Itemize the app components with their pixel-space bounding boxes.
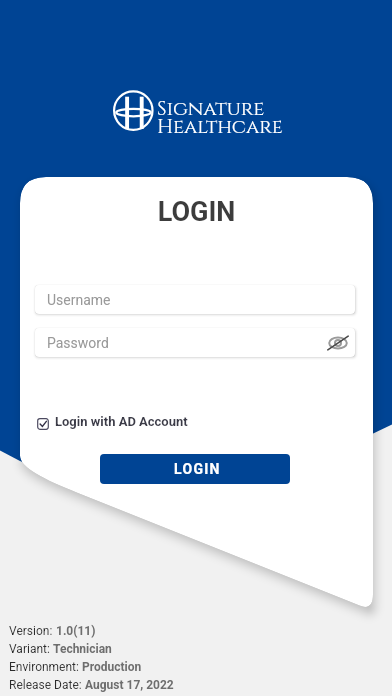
staticText: Login with AD Account bbox=[55, 414, 188, 429]
staticText: LOGIN bbox=[20, 196, 373, 228]
staticText: Variant: bbox=[9, 642, 53, 656]
staticText: August 17, 2022 bbox=[85, 678, 174, 692]
staticText: Signature bbox=[157, 95, 265, 122]
staticText: Release Date: bbox=[9, 678, 85, 692]
button[interactable]: Password bbox=[35, 328, 355, 357]
button[interactable]: Username bbox=[35, 285, 355, 314]
staticText: Password bbox=[47, 335, 109, 351]
staticText: Healthcare bbox=[157, 113, 283, 140]
button[interactable]: Show password bbox=[324, 329, 352, 357]
button[interactable]: LOGIN bbox=[100, 454, 290, 484]
staticText: LOGIN bbox=[174, 461, 221, 477]
staticText: Version: bbox=[9, 624, 56, 638]
staticText: 1.0(11) bbox=[56, 624, 96, 638]
staticText: Technician bbox=[53, 642, 112, 656]
staticText: Username bbox=[47, 292, 111, 308]
staticText: Production bbox=[82, 660, 142, 674]
staticText: Environment: bbox=[9, 660, 82, 674]
button[interactable]: Login with AD Account bbox=[37, 414, 188, 429]
